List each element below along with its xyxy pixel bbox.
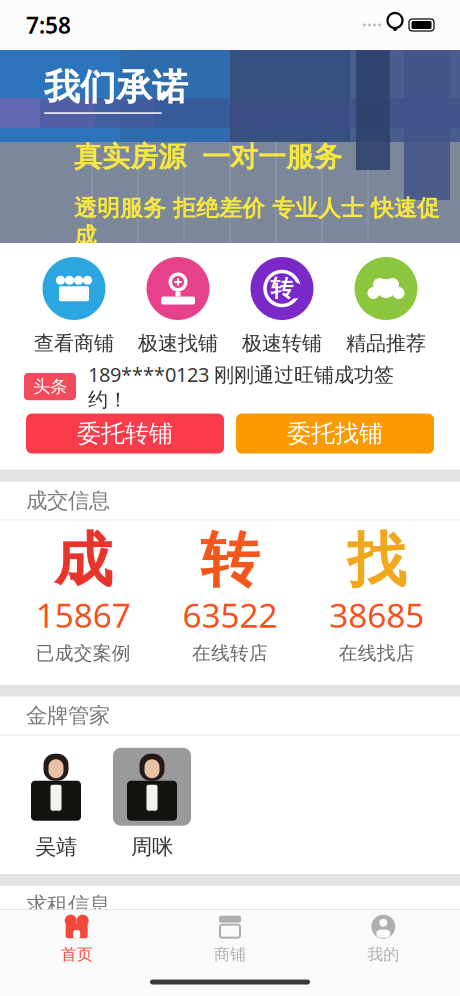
staticText: 首页 [61, 945, 93, 964]
staticText: 极速找铺 [138, 331, 218, 356]
button[interactable]: 查看商铺 [22, 257, 126, 356]
staticText: 极速转铺 [242, 331, 322, 356]
staticText: 精品推荐 [346, 331, 426, 356]
staticText: 吴靖 [35, 834, 77, 860]
button[interactable]: 头条 [0, 372, 460, 402]
button[interactable]: 委托找铺 [236, 414, 434, 454]
staticText: 在线找店 [339, 642, 415, 665]
button[interactable]: 首页 [0, 914, 153, 964]
button[interactable]: 委托转铺 [26, 414, 224, 454]
staticText: 转 [200, 524, 259, 597]
staticText: 求租信息 [26, 892, 110, 918]
button[interactable]: 我的 [307, 914, 460, 964]
staticText: 周咪 [131, 834, 173, 860]
staticText: 63522 [182, 593, 277, 637]
staticText: 38685 [329, 593, 424, 637]
staticText: 我们承诺 [44, 65, 188, 109]
button[interactable]: 转 [230, 257, 334, 356]
staticText: 在线转店 [192, 642, 268, 665]
staticText: 转 [270, 275, 293, 302]
staticText: 查看商铺 [34, 331, 114, 356]
staticText: 委托转铺 [77, 419, 173, 448]
staticText: 成 [54, 524, 113, 597]
staticText: 委托找铺 [287, 419, 383, 448]
button[interactable]: 吴靖 [8, 748, 104, 860]
staticText: 金牌管家 [26, 703, 110, 729]
staticText: 15867 [36, 593, 131, 637]
button[interactable]: 商铺 [153, 914, 307, 964]
staticText: 我的 [367, 945, 399, 964]
staticText: 已成交案例 [36, 642, 131, 665]
staticText: 7:58 [26, 10, 71, 40]
staticText: 头条 [33, 376, 67, 397]
button[interactable]: 极速找铺 [126, 257, 230, 356]
staticText: 成交信息 [26, 487, 110, 514]
button[interactable]: 精品推荐 [334, 257, 438, 356]
staticText: 商铺 [214, 945, 246, 964]
staticText: 真实房源 一对一服务 [74, 140, 342, 174]
staticText: 找 [347, 524, 406, 597]
button[interactable]: 周咪 [104, 748, 200, 860]
staticText: 透明服务 拒绝差价 专业人士 快速促成 [74, 194, 440, 250]
staticText: 189****0123 刚刚通过旺铺成功签约！ [88, 361, 394, 412]
